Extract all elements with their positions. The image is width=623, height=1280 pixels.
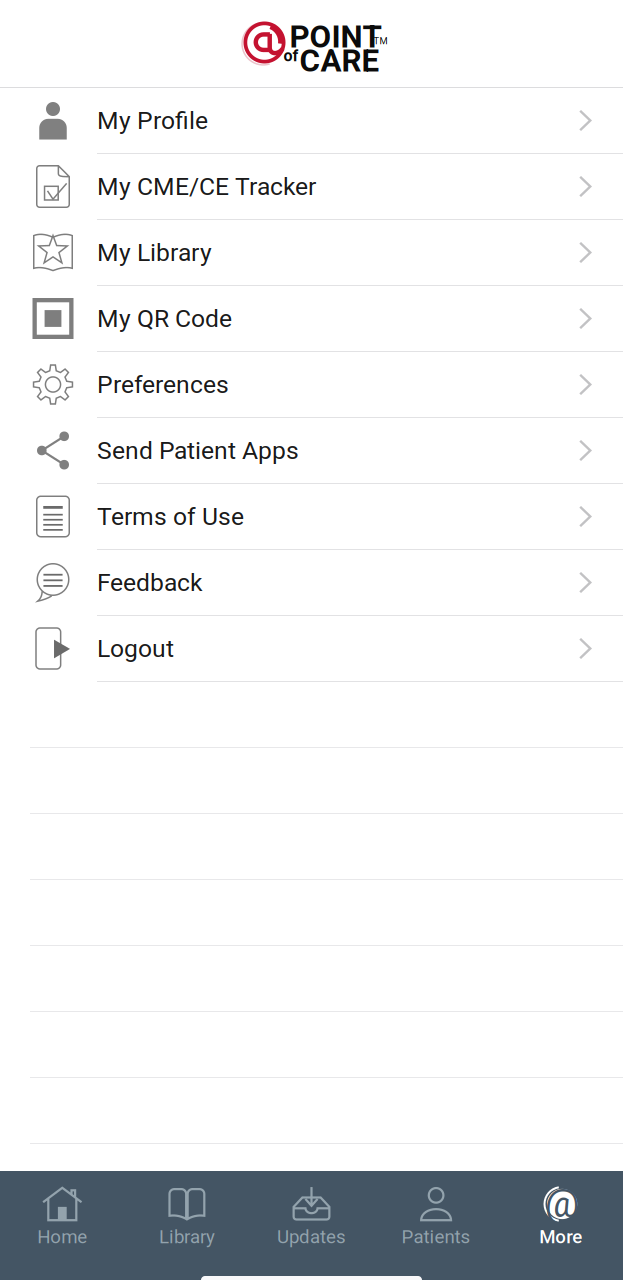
staticText: of bbox=[283, 46, 298, 65]
staticText: Patients bbox=[402, 1226, 471, 1248]
staticText: Updates bbox=[277, 1226, 346, 1248]
staticText: Logout bbox=[97, 634, 174, 663]
button[interactable]: My Library bbox=[0, 220, 623, 286]
button[interactable]: Send Patient Apps bbox=[0, 418, 623, 484]
staticText: CARE bbox=[299, 42, 379, 79]
button[interactable]: My Profile bbox=[0, 88, 623, 154]
staticText: TM bbox=[373, 35, 387, 46]
staticText: My CME/CE Tracker bbox=[97, 172, 316, 201]
staticText: POINT bbox=[289, 18, 381, 55]
staticText: Preferences bbox=[97, 370, 229, 399]
staticText: Library bbox=[159, 1226, 215, 1248]
staticText: Terms of Use bbox=[97, 502, 244, 531]
button[interactable]: @ bbox=[498, 1171, 623, 1280]
button[interactable]: Library bbox=[125, 1171, 249, 1280]
button[interactable]: Preferences bbox=[0, 352, 623, 418]
button[interactable]: Home bbox=[0, 1171, 125, 1280]
button[interactable]: Feedback bbox=[0, 550, 623, 616]
button[interactable]: Logout bbox=[0, 616, 623, 682]
staticText: Feedback bbox=[97, 568, 203, 597]
button[interactable]: My QR Code bbox=[0, 286, 623, 352]
staticText: Home bbox=[37, 1226, 87, 1248]
button[interactable]: Updates bbox=[249, 1171, 374, 1280]
button[interactable]: Terms of Use bbox=[0, 484, 623, 550]
staticText: My Profile bbox=[97, 106, 208, 135]
button[interactable]: Patients bbox=[374, 1171, 498, 1280]
button[interactable]: My CME/CE Tracker bbox=[0, 154, 623, 220]
staticText: @ bbox=[545, 1181, 579, 1226]
staticText: More bbox=[539, 1226, 582, 1248]
staticText: My Library bbox=[97, 238, 212, 267]
staticText: Send Patient Apps bbox=[97, 436, 299, 465]
staticText: My QR Code bbox=[97, 304, 232, 333]
